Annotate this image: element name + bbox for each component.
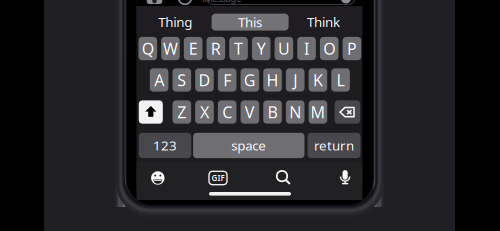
staticText: W bbox=[163, 38, 178, 59]
button[interactable]: Y bbox=[252, 37, 270, 60]
button[interactable]: Search bbox=[273, 167, 293, 187]
staticText: M bbox=[310, 101, 325, 123]
staticText: X bbox=[200, 101, 209, 123]
staticText: Thing bbox=[158, 13, 192, 31]
button[interactable]: B bbox=[263, 100, 282, 124]
staticText: L bbox=[337, 69, 345, 90]
button[interactable]: R bbox=[206, 37, 225, 60]
button[interactable]: M bbox=[309, 100, 327, 124]
button[interactable]: E bbox=[184, 37, 202, 60]
button[interactable]: H bbox=[263, 68, 282, 92]
button[interactable]: W bbox=[161, 37, 180, 60]
button[interactable]: L bbox=[331, 68, 350, 92]
button[interactable]: D bbox=[195, 68, 214, 92]
button[interactable]: J bbox=[286, 68, 304, 92]
staticText: F bbox=[223, 69, 231, 90]
staticText: return bbox=[314, 137, 354, 154]
button[interactable]: GIF bbox=[207, 168, 229, 188]
staticText: P bbox=[347, 38, 357, 59]
staticText: K bbox=[313, 69, 323, 90]
staticText: N bbox=[289, 101, 301, 123]
button[interactable]: G bbox=[241, 68, 259, 92]
button[interactable]: space bbox=[193, 133, 304, 158]
button[interactable]: S bbox=[172, 68, 191, 92]
staticText: R bbox=[211, 38, 221, 59]
button[interactable]: F bbox=[218, 68, 236, 92]
button[interactable]: X bbox=[195, 100, 214, 124]
staticText: O bbox=[323, 38, 335, 59]
button[interactable]: Thing bbox=[138, 10, 212, 34]
button[interactable]: Emoji bbox=[148, 168, 168, 188]
button[interactable]: Think bbox=[286, 10, 360, 34]
button[interactable]: N bbox=[286, 100, 304, 124]
button[interactable]: P bbox=[343, 37, 361, 60]
button[interactable]: K bbox=[309, 68, 327, 92]
staticText: A bbox=[154, 69, 164, 90]
staticText: Y bbox=[257, 38, 266, 59]
button[interactable]: I bbox=[297, 37, 316, 60]
staticText: B bbox=[267, 101, 277, 123]
staticText: U bbox=[278, 38, 290, 59]
button[interactable]: O bbox=[320, 37, 338, 60]
button[interactable]: 123 bbox=[139, 133, 191, 158]
staticText: C bbox=[222, 101, 232, 123]
button[interactable]: This bbox=[212, 14, 289, 31]
button[interactable]: T bbox=[229, 37, 248, 60]
staticText: G bbox=[244, 69, 256, 90]
staticText: This bbox=[238, 13, 262, 31]
button[interactable]: Q bbox=[138, 37, 157, 60]
staticText: space bbox=[231, 137, 266, 154]
staticText: S bbox=[177, 69, 186, 90]
staticText: Think bbox=[307, 13, 340, 31]
staticText: H bbox=[266, 69, 278, 90]
staticText: I bbox=[304, 38, 309, 59]
staticText: GIF bbox=[211, 172, 224, 183]
button[interactable]: A bbox=[150, 68, 168, 92]
staticText: J bbox=[293, 69, 297, 90]
staticText: Z bbox=[177, 101, 186, 123]
button[interactable]: Dictate bbox=[335, 167, 355, 187]
button[interactable]: return bbox=[307, 133, 360, 158]
staticText: V bbox=[245, 101, 255, 123]
button[interactable]: Z bbox=[172, 100, 191, 124]
button[interactable]: Shift bbox=[139, 100, 163, 124]
staticText: iMessage bbox=[202, 0, 241, 5]
staticText: Q bbox=[142, 38, 154, 59]
button[interactable]: U bbox=[275, 37, 293, 60]
staticText: T bbox=[234, 38, 243, 59]
staticText: E bbox=[189, 38, 198, 59]
button[interactable]: C bbox=[218, 100, 236, 124]
staticText: 123 bbox=[153, 137, 177, 154]
button[interactable]: Delete bbox=[335, 100, 360, 124]
button[interactable]: V bbox=[241, 100, 259, 124]
staticText: D bbox=[198, 69, 210, 90]
